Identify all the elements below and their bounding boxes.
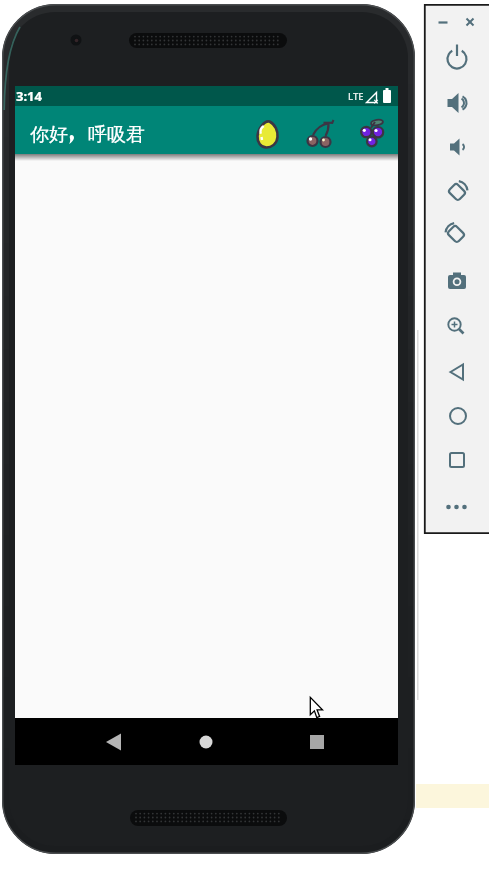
button[interactable] (294, 106, 342, 154)
button[interactable] (433, 12, 453, 32)
button[interactable] (438, 85, 474, 121)
staticText: LTE (348, 90, 364, 103)
button[interactable] (439, 173, 475, 209)
button[interactable] (347, 106, 395, 154)
button[interactable] (438, 215, 474, 251)
button[interactable] (439, 442, 475, 478)
staticText: 呼吸君 (88, 123, 145, 147)
staticText: 3:14 (16, 87, 42, 105)
staticText: 你好 (30, 123, 68, 147)
button[interactable] (439, 40, 475, 76)
button[interactable] (297, 718, 337, 765)
button[interactable] (460, 12, 480, 32)
button[interactable] (243, 106, 291, 154)
button[interactable] (438, 309, 474, 345)
button[interactable] (186, 718, 226, 765)
button[interactable] (440, 398, 476, 434)
button[interactable] (439, 492, 475, 522)
button[interactable] (94, 718, 134, 765)
button[interactable] (438, 128, 474, 164)
button[interactable] (439, 354, 475, 390)
button[interactable] (439, 263, 475, 299)
